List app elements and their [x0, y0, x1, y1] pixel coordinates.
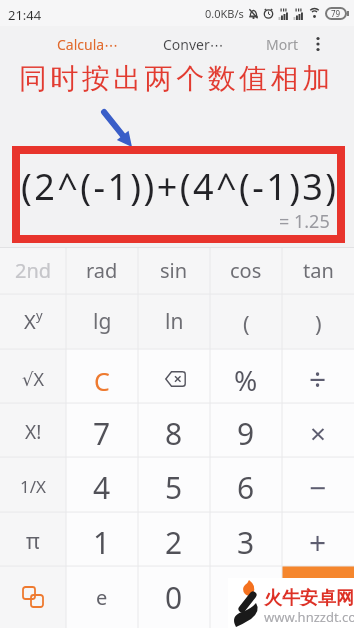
- button[interactable]: +: [282, 512, 354, 566]
- staticText: ×: [310, 414, 327, 452]
- button[interactable]: 2: [138, 512, 210, 566]
- staticText: rad: [86, 257, 118, 284]
- staticText: e: [96, 584, 108, 611]
- button[interactable]: −: [282, 457, 354, 512]
- button[interactable]: e: [66, 566, 138, 628]
- button[interactable]: ): [282, 294, 354, 349]
- button[interactable]: Calcula⋯: [57, 35, 119, 54]
- staticText: C: [94, 364, 110, 398]
- button[interactable]: 6: [210, 457, 282, 512]
- staticText: 9: [237, 413, 255, 454]
- button[interactable]: 9: [210, 403, 282, 457]
- staticText: X: [24, 308, 36, 335]
- staticText: 7: [93, 413, 111, 454]
- button[interactable]: 8: [138, 403, 210, 457]
- button[interactable]: Conver⋯: [163, 35, 224, 54]
- staticText: 火牛安卓网: [264, 587, 354, 610]
- staticText: tan: [303, 257, 334, 284]
- staticText: (: [243, 308, 250, 338]
- button[interactable]: =: [282, 566, 354, 628]
- staticText: lg: [93, 307, 112, 336]
- staticText: ÷: [309, 359, 327, 400]
- staticText: y: [36, 306, 43, 324]
- staticText: +: [309, 522, 327, 563]
- staticText: (2^(-1))+(4^(-1)3): [21, 162, 339, 211]
- staticText: .: [242, 577, 251, 618]
- staticText: sin: [160, 257, 188, 284]
- button[interactable]: 1: [66, 512, 138, 566]
- button[interactable]: rad: [66, 247, 138, 294]
- staticText: 同时按出两个数值相加: [17, 61, 332, 96]
- button[interactable]: lg: [66, 294, 138, 349]
- button[interactable]: .: [210, 566, 282, 628]
- button[interactable]: 5: [138, 457, 210, 512]
- staticText: 4: [93, 467, 111, 508]
- staticText: 79: [331, 8, 341, 19]
- button[interactable]: π: [0, 512, 66, 566]
- staticText: 2: [165, 522, 183, 563]
- staticText: 0: [165, 577, 183, 618]
- staticText: 6: [237, 467, 255, 508]
- staticText: 3: [237, 522, 255, 563]
- button[interactable]: [0, 566, 66, 628]
- staticText: 1/X: [20, 475, 47, 498]
- button[interactable]: cos: [210, 247, 282, 294]
- staticText: 2nd: [15, 257, 52, 284]
- staticText: 1: [93, 522, 111, 563]
- button[interactable]: 1/X: [0, 457, 66, 512]
- button[interactable]: X: [0, 294, 66, 349]
- button[interactable]: sin: [138, 247, 210, 294]
- button[interactable]: ÷: [282, 349, 354, 403]
- button[interactable]: √X: [0, 349, 66, 403]
- button[interactable]: [312, 36, 324, 52]
- button[interactable]: %: [210, 349, 282, 403]
- staticText: 21:44: [8, 6, 42, 24]
- staticText: 5: [165, 467, 183, 508]
- button[interactable]: tan: [282, 247, 354, 294]
- button[interactable]: Mort: [266, 35, 299, 54]
- staticText: =: [309, 577, 327, 618]
- staticText: www.hnzzdt.com: [264, 608, 354, 626]
- staticText: ln: [165, 307, 184, 336]
- button[interactable]: [138, 349, 210, 403]
- staticText: = 1.25: [279, 209, 330, 234]
- staticText: X!: [25, 419, 42, 445]
- button[interactable]: (: [210, 294, 282, 349]
- staticText: π: [26, 527, 40, 556]
- button[interactable]: X!: [0, 403, 66, 457]
- button[interactable]: 0: [138, 566, 210, 628]
- staticText: %: [234, 361, 258, 399]
- button[interactable]: C: [66, 349, 138, 403]
- staticText: 8: [165, 413, 183, 454]
- staticText: 0.0KB/s: [205, 6, 244, 21]
- staticText: −: [309, 467, 327, 508]
- button[interactable]: 2nd: [0, 247, 66, 294]
- staticText: cos: [230, 257, 262, 284]
- button[interactable]: 3: [210, 512, 282, 566]
- button[interactable]: 7: [66, 403, 138, 457]
- button[interactable]: 4: [66, 457, 138, 512]
- button[interactable]: ×: [282, 403, 354, 457]
- button[interactable]: ln: [138, 294, 210, 349]
- staticText: √X: [22, 367, 45, 392]
- staticText: ): [315, 308, 322, 338]
